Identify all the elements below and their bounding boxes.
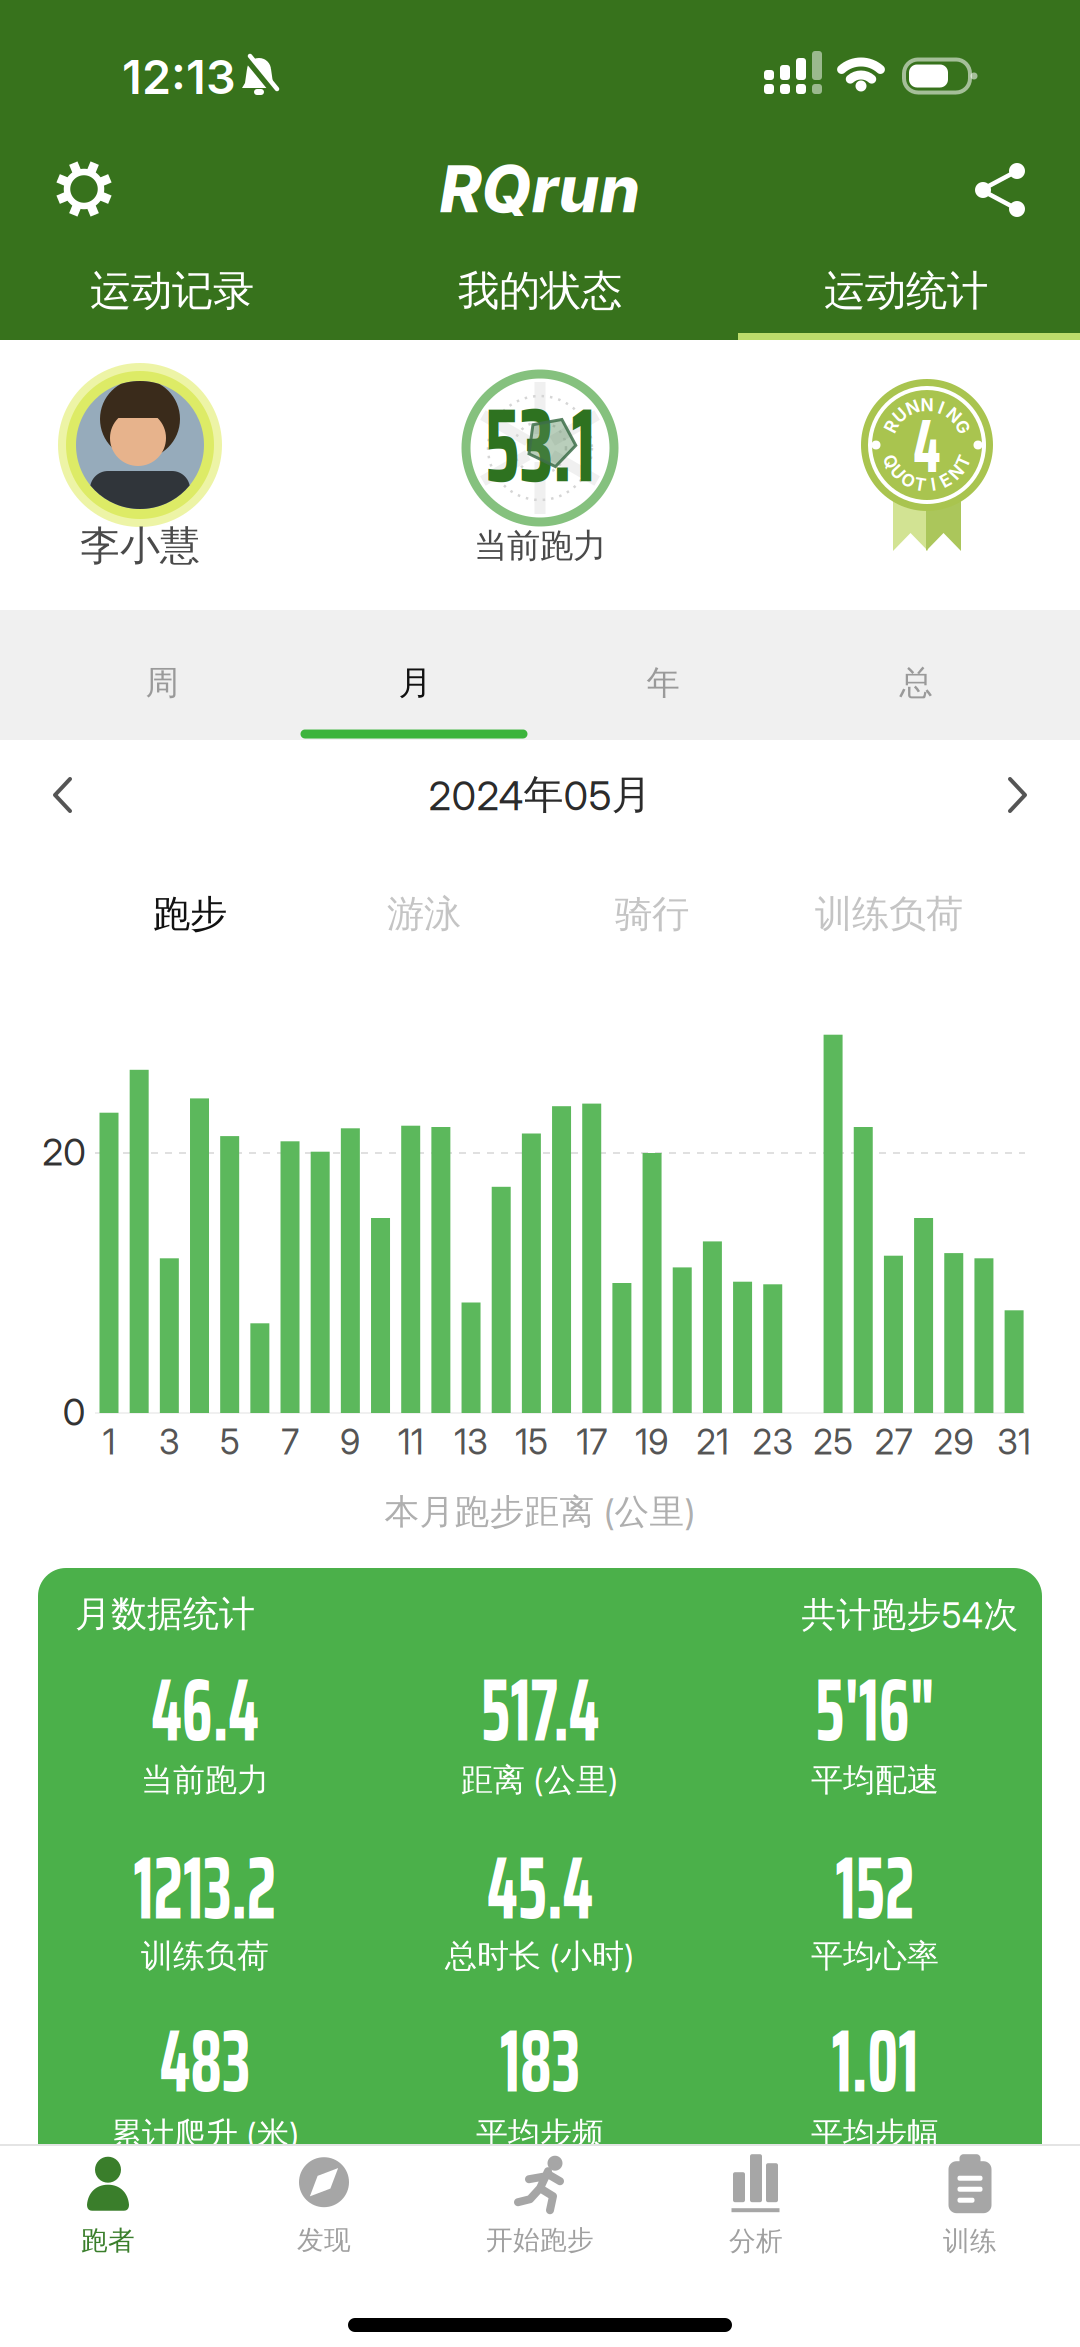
staticText: T bbox=[914, 474, 926, 495]
staticText: 5 bbox=[220, 1421, 240, 1463]
staticText: 距离 (公里) bbox=[461, 1760, 619, 1800]
button[interactable]: 运动记录 bbox=[90, 265, 254, 317]
staticText: 45.4 bbox=[468, 1819, 611, 1957]
button[interactable]: 游泳 bbox=[387, 890, 461, 937]
staticText: 7 bbox=[281, 1421, 299, 1463]
staticText: 当前跑力 bbox=[141, 1760, 269, 1800]
staticText: 总时长 (小时) bbox=[445, 1936, 635, 1976]
staticText: 183 bbox=[486, 1992, 594, 2130]
button[interactable]: 开始跑步 bbox=[486, 2155, 594, 2257]
button[interactable]: 骑行 bbox=[615, 890, 689, 937]
staticText: N bbox=[906, 397, 919, 418]
staticText: 跑者 bbox=[81, 2224, 135, 2257]
staticText: 运动统计 bbox=[824, 265, 988, 317]
button[interactable]: Next month bbox=[1004, 776, 1030, 814]
staticText: 152 bbox=[821, 1819, 928, 1957]
staticText: I bbox=[939, 397, 944, 418]
staticText: 周 bbox=[145, 662, 178, 704]
staticText: 月数据统计 bbox=[75, 1591, 255, 1637]
staticText: E bbox=[940, 470, 951, 491]
staticText: 年 bbox=[646, 662, 679, 704]
staticText: 运动记录 bbox=[90, 265, 254, 317]
staticText: 12:13 bbox=[122, 49, 236, 105]
staticText: 总 bbox=[899, 662, 932, 704]
staticText: 当前跑力 bbox=[474, 525, 606, 567]
staticText: 1 bbox=[102, 1421, 115, 1463]
staticText: 483 bbox=[144, 1992, 266, 2130]
staticText: T bbox=[957, 451, 969, 472]
button[interactable]: 运动统计 bbox=[824, 265, 988, 317]
staticText: G bbox=[956, 416, 969, 437]
staticText: 5'16" bbox=[794, 1641, 956, 1779]
staticText: N bbox=[950, 462, 963, 483]
staticText: O bbox=[901, 470, 914, 491]
staticText: 骑行 bbox=[615, 890, 689, 937]
button[interactable]: 周 bbox=[145, 662, 178, 704]
staticText: 平均步幅 bbox=[811, 2114, 939, 2154]
staticText: 15 bbox=[515, 1421, 548, 1463]
button[interactable]: Previous month bbox=[50, 776, 76, 814]
staticText: 27 bbox=[874, 1421, 912, 1463]
staticText: 11 bbox=[398, 1421, 424, 1463]
staticText: 跑步 bbox=[153, 890, 227, 937]
staticText: 19 bbox=[635, 1421, 669, 1463]
staticText: 训练 bbox=[943, 2224, 997, 2258]
staticText: 3 bbox=[159, 1421, 180, 1463]
button[interactable]: 跑者 bbox=[81, 2155, 135, 2257]
staticText: 25 bbox=[813, 1421, 853, 1463]
staticText: 9 bbox=[340, 1421, 361, 1463]
staticText: 53.1 bbox=[465, 363, 614, 527]
staticText: 2024年05月 bbox=[428, 770, 651, 820]
button[interactable]: 发现 bbox=[297, 2157, 351, 2257]
staticText: 开始跑步 bbox=[486, 2223, 594, 2257]
button[interactable]: 年 bbox=[646, 662, 679, 704]
staticText: 平均心率 bbox=[811, 1936, 939, 1976]
button[interactable]: Share bbox=[973, 162, 1027, 218]
staticText: 游泳 bbox=[387, 890, 461, 937]
button[interactable]: 训练负荷 bbox=[815, 890, 963, 937]
staticText: U bbox=[894, 405, 907, 426]
staticText: 累计爬升 (米) bbox=[110, 2114, 300, 2154]
staticText: I bbox=[931, 474, 936, 495]
staticText: RQrun bbox=[439, 150, 640, 228]
button[interactable]: 总 bbox=[899, 662, 932, 704]
staticText: 李小慧 bbox=[80, 521, 200, 571]
staticText: Q bbox=[884, 451, 897, 472]
staticText: R bbox=[886, 416, 897, 437]
staticText: N bbox=[947, 405, 960, 426]
button[interactable]: 我的状态 bbox=[458, 265, 622, 317]
button[interactable]: Settings bbox=[56, 161, 112, 217]
staticText: 1.01 bbox=[816, 1992, 933, 2130]
button[interactable]: 训练 bbox=[943, 2154, 997, 2258]
staticText: U bbox=[891, 462, 904, 483]
staticText: 29 bbox=[933, 1421, 974, 1463]
staticText: 训练负荷 bbox=[141, 1936, 269, 1976]
staticText: 月 bbox=[398, 662, 431, 704]
staticText: 21 bbox=[696, 1421, 729, 1463]
button[interactable]: 李小慧 bbox=[50, 372, 230, 592]
staticText: N bbox=[920, 394, 933, 415]
staticText: 46.4 bbox=[132, 1641, 277, 1779]
staticText: 平均配速 bbox=[811, 1760, 939, 1800]
staticText: 训练负荷 bbox=[815, 890, 963, 937]
button[interactable]: 月 bbox=[398, 662, 431, 704]
staticText: 发现 bbox=[297, 2223, 351, 2257]
staticText: 17 bbox=[576, 1421, 607, 1463]
staticText: 13 bbox=[454, 1421, 488, 1463]
staticText: 0 bbox=[62, 1389, 85, 1435]
staticText: 平均步频 bbox=[476, 2114, 604, 2154]
staticText: 本月跑步距离 (公里) bbox=[384, 1490, 695, 1534]
staticText: 共计跑步54次 bbox=[801, 1593, 1018, 1637]
staticText: 4 bbox=[909, 387, 944, 505]
button[interactable]: 跑步 bbox=[153, 890, 227, 937]
staticText: 我的状态 bbox=[458, 265, 622, 317]
staticText: 1213.2 bbox=[108, 1819, 301, 1957]
button[interactable]: 分析 bbox=[729, 2154, 783, 2258]
staticText: 分析 bbox=[729, 2224, 783, 2258]
staticText: 517.4 bbox=[460, 1641, 620, 1779]
staticText: 31 bbox=[997, 1421, 1031, 1463]
staticText: 20 bbox=[42, 1129, 86, 1175]
staticText: 23 bbox=[752, 1421, 793, 1463]
